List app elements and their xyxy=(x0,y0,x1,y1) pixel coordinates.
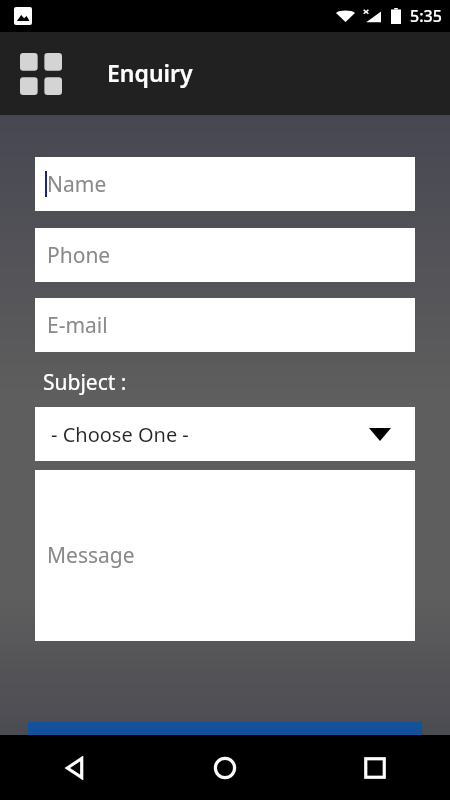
button[interactable]: Home xyxy=(150,735,300,800)
button[interactable]: Phone xyxy=(35,228,415,282)
staticText: Phone xyxy=(47,241,111,270)
staticText: E-mail xyxy=(47,311,108,340)
button[interactable]: Message xyxy=(35,470,415,641)
button[interactable]: Menu xyxy=(14,47,68,101)
staticText: 5:35 xyxy=(410,5,442,27)
button[interactable]: Back xyxy=(0,735,150,800)
staticText: Name xyxy=(47,170,107,199)
button[interactable]: E-mail xyxy=(35,298,415,352)
staticText: Enquiry xyxy=(107,57,193,88)
staticText: - Choose One - xyxy=(51,421,189,448)
button[interactable]: Recent apps xyxy=(300,735,450,800)
button[interactable]: - Choose One - xyxy=(35,407,415,461)
staticText: Subject : xyxy=(43,368,127,397)
staticText: Message xyxy=(47,541,135,570)
button[interactable]: Name xyxy=(35,157,415,211)
